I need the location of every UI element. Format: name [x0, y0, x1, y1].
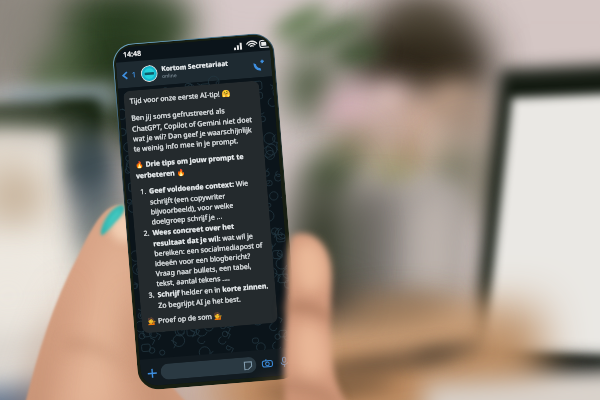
button[interactable]: Voice message	[277, 355, 292, 370]
staticText: 1.	[140, 187, 147, 197]
staticText: Ben jij soms gefrustreerd als ChatGPT, C…	[131, 104, 258, 154]
staticText: 💁 Proef op de som 💁	[147, 311, 224, 327]
button[interactable]: Camera	[260, 356, 275, 371]
staticText: Geef voldoende context: Wie schrijft (ee…	[149, 177, 264, 226]
button[interactable]: Attach	[144, 365, 159, 380]
other: Stickers	[243, 361, 253, 370]
staticText: Tijd voor onze eerste AI-tip! 🤗	[130, 89, 231, 107]
staticText: Schrijf helder en in korte zinnen. Zo be…	[157, 281, 270, 310]
staticText: 3.	[148, 290, 155, 301]
staticText: 14:48	[123, 49, 141, 60]
staticText: 🔥 Drie tips om jouw prompt te verbeteren…	[135, 151, 260, 180]
button[interactable]: Back	[118, 68, 132, 82]
staticText: 2.	[143, 229, 150, 239]
staticText: Wees concreet over het resultaat dat je …	[152, 219, 269, 288]
button[interactable]: Stickers	[160, 356, 257, 380]
staticText: online	[162, 72, 177, 80]
staticText: 1	[131, 69, 137, 79]
button[interactable]: Video call	[249, 56, 267, 74]
staticText: Kortom Secretariaat	[161, 59, 228, 73]
